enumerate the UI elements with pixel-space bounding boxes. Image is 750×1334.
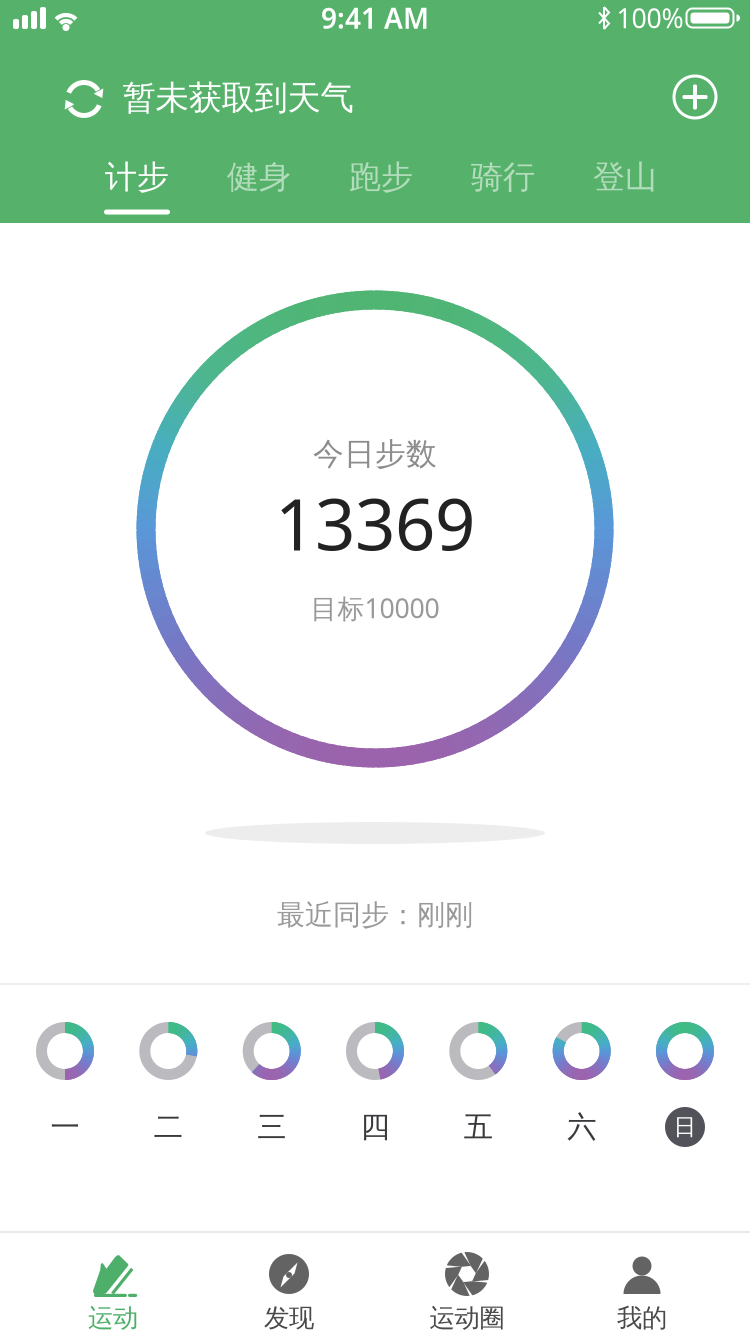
staticText: 六 xyxy=(567,1109,596,1145)
staticText: 9:41 AM xyxy=(321,0,429,37)
staticText: 今日步数 xyxy=(313,435,437,473)
staticText: 三 xyxy=(257,1109,286,1145)
staticText: 100% xyxy=(616,0,683,36)
staticText: 最近同步：刚刚 xyxy=(277,898,473,932)
staticText: 目标10000 xyxy=(310,590,439,626)
staticText: 13369 xyxy=(275,476,475,570)
staticText: 跑步 xyxy=(349,157,413,197)
staticText: 四 xyxy=(360,1109,389,1145)
staticText: 一 xyxy=(50,1109,79,1145)
staticText: 健身 xyxy=(227,157,291,197)
staticText: 骑行 xyxy=(471,157,535,197)
staticText: 五 xyxy=(464,1109,493,1145)
staticText: 暂未获取到天气 xyxy=(122,77,353,118)
staticText: 日 xyxy=(673,1113,696,1141)
staticText: 我的 xyxy=(617,1302,667,1333)
staticText: 发现 xyxy=(264,1302,314,1333)
staticText: 计步 xyxy=(105,157,169,197)
staticText: 登山 xyxy=(593,157,657,197)
staticText: 二 xyxy=(154,1109,183,1145)
staticText: 运动 xyxy=(88,1302,138,1333)
staticText: 运动圈 xyxy=(429,1302,504,1333)
